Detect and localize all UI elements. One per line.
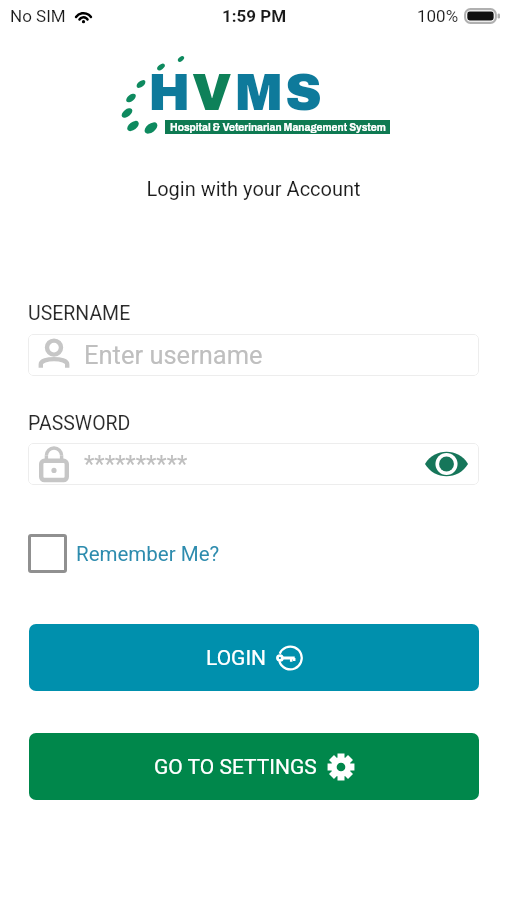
- staticText: V: [193, 66, 235, 121]
- button[interactable]: Enter username: [34, 334, 473, 376]
- staticText: V: [191, 66, 233, 121]
- staticText: MS: [233, 64, 323, 119]
- button[interactable]: **********: [34, 443, 473, 485]
- button[interactable]: Show password: [420, 443, 473, 485]
- staticText: LOGIN: [206, 646, 267, 671]
- staticText: H: [149, 64, 193, 119]
- button[interactable]: Remember Me?: [28, 534, 220, 573]
- staticText: H: [147, 64, 191, 119]
- staticText: No SIM: [10, 6, 66, 26]
- staticText: V: [192, 65, 234, 120]
- staticText: 100%: [417, 6, 459, 26]
- staticText: V: [193, 64, 235, 119]
- staticText: Login with your Account: [0, 177, 507, 200]
- staticText: H: [148, 65, 192, 120]
- staticText: H: [147, 66, 191, 121]
- staticText: 1:59 PM: [222, 6, 287, 26]
- staticText: MS: [233, 66, 323, 121]
- staticText: GO TO SETTINGS: [154, 755, 317, 780]
- staticText: **********: [84, 450, 188, 478]
- button[interactable]: GO TO SETTINGS: [29, 733, 479, 800]
- staticText: Enter username: [84, 340, 263, 370]
- staticText: Remember Me?: [76, 542, 220, 566]
- button[interactable]: LOGIN: [29, 624, 479, 691]
- staticText: V: [191, 64, 233, 119]
- staticText: MS: [235, 64, 325, 119]
- staticText: USERNAME: [28, 302, 131, 325]
- staticText: MS: [234, 65, 324, 120]
- staticText: PASSWORD: [28, 412, 131, 435]
- staticText: MS: [235, 66, 325, 121]
- staticText: H: [149, 66, 193, 121]
- staticText: Hospital & Veterinarian Management Syste…: [170, 122, 386, 133]
